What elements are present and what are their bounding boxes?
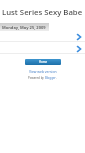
other: Open post [77,34,81,40]
other: Open post [77,46,81,52]
staticText: . [56,76,57,80]
button[interactable]: Blogger [45,76,56,80]
staticText: Monday, May 25, 2009 [2,25,46,30]
button[interactable]: Open post [0,31,85,41]
button[interactable]: View web version [29,69,57,74]
button[interactable]: Home [25,59,61,65]
staticText: Lust Series Sexy Babe [2,7,83,18]
staticText: Home [39,60,47,64]
button[interactable]: Open post [0,42,85,53]
staticText: Powered by [28,76,45,80]
